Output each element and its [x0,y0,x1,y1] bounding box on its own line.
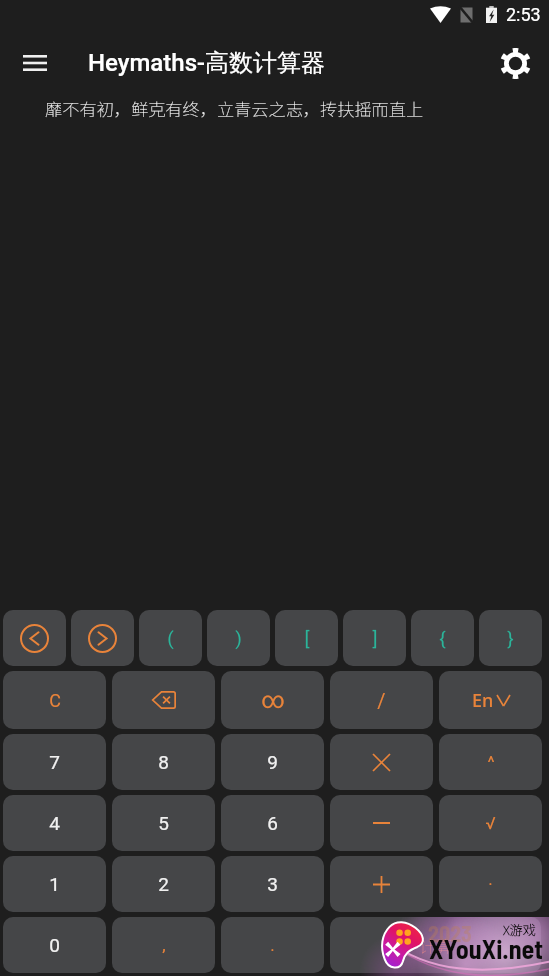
button[interactable]: 0 [3,917,106,973]
button[interactable]: √ [439,795,542,851]
other: Previous [20,624,49,653]
button[interactable]: English [439,671,542,729]
button[interactable]: 8 [112,734,215,790]
staticText: 2 [158,873,169,895]
button[interactable]: Settings [493,41,537,85]
staticText: 7 [49,751,60,773]
other: Minus [373,821,390,825]
staticText: , [162,935,166,955]
staticText: 5 [158,812,169,834]
staticText: 3 [267,873,278,895]
button[interactable]: 5 [112,795,215,851]
button[interactable]: ) [207,610,270,666]
staticText: En [472,688,494,713]
button[interactable]: Previous [3,610,66,666]
staticText: 靡不有初，鲜克有终，立青云之志，抟扶摇而直上 [45,96,424,121]
button[interactable]: 7 [3,734,106,790]
button[interactable]: Minus [330,795,433,851]
staticText: ^ [487,752,495,772]
staticText: 1 [49,873,60,895]
button[interactable]: [ [275,610,338,666]
button[interactable]: , [112,917,215,973]
staticText: } [507,627,514,649]
other: Backspace [151,691,176,709]
button[interactable]: ] [343,610,406,666]
staticText: 2:53 [506,4,541,25]
staticText: 0 [49,934,60,956]
button[interactable]: 6 [221,795,324,851]
button[interactable]: Multiply [330,734,433,790]
button[interactable]: 2 [112,856,215,912]
staticText: XYouXi.net [429,933,543,964]
staticText: ∞ [261,687,285,714]
staticText: / [377,689,386,712]
button[interactable]: 3 [221,856,324,912]
button[interactable]: 9 [221,734,324,790]
button[interactable]: Next [71,610,134,666]
button[interactable]: . [221,917,324,973]
button[interactable]: / [330,671,433,729]
staticText: 8 [158,751,169,773]
staticText: 4 [49,812,60,834]
button[interactable]: 4 [3,795,106,851]
button[interactable]: · [439,856,542,912]
staticText: 计算 [419,933,453,958]
button[interactable]: Backspace [112,671,215,729]
staticText: · [488,874,493,894]
staticText: 2023 [428,920,472,946]
staticText: ] [372,627,378,649]
other: Plus [373,876,390,893]
staticText: X游戏 [503,920,536,939]
button[interactable]: Menu [12,40,57,85]
button[interactable]: ( [139,610,202,666]
button[interactable]: 计算 [330,917,541,973]
other: Next [88,624,117,653]
staticText: ) [235,627,242,649]
button[interactable]: C [3,671,106,729]
staticText: C [49,690,61,711]
staticText: . [270,935,275,955]
button[interactable]: } [479,610,542,666]
button[interactable]: 1 [3,856,106,912]
staticText: 6 [267,812,278,834]
staticText: Heymaths-高数计算器 [88,48,325,78]
button[interactable]: ∞ [221,671,324,729]
button[interactable]: { [411,610,474,666]
staticText: √ [485,813,496,833]
button[interactable]: Plus [330,856,433,912]
button[interactable]: ^ [439,734,542,790]
other: Multiply [373,754,390,771]
staticText: { [439,627,446,649]
staticText: [ [304,627,310,649]
other: English [472,688,510,713]
staticText: 9 [267,751,278,773]
staticText: ( [167,627,174,649]
